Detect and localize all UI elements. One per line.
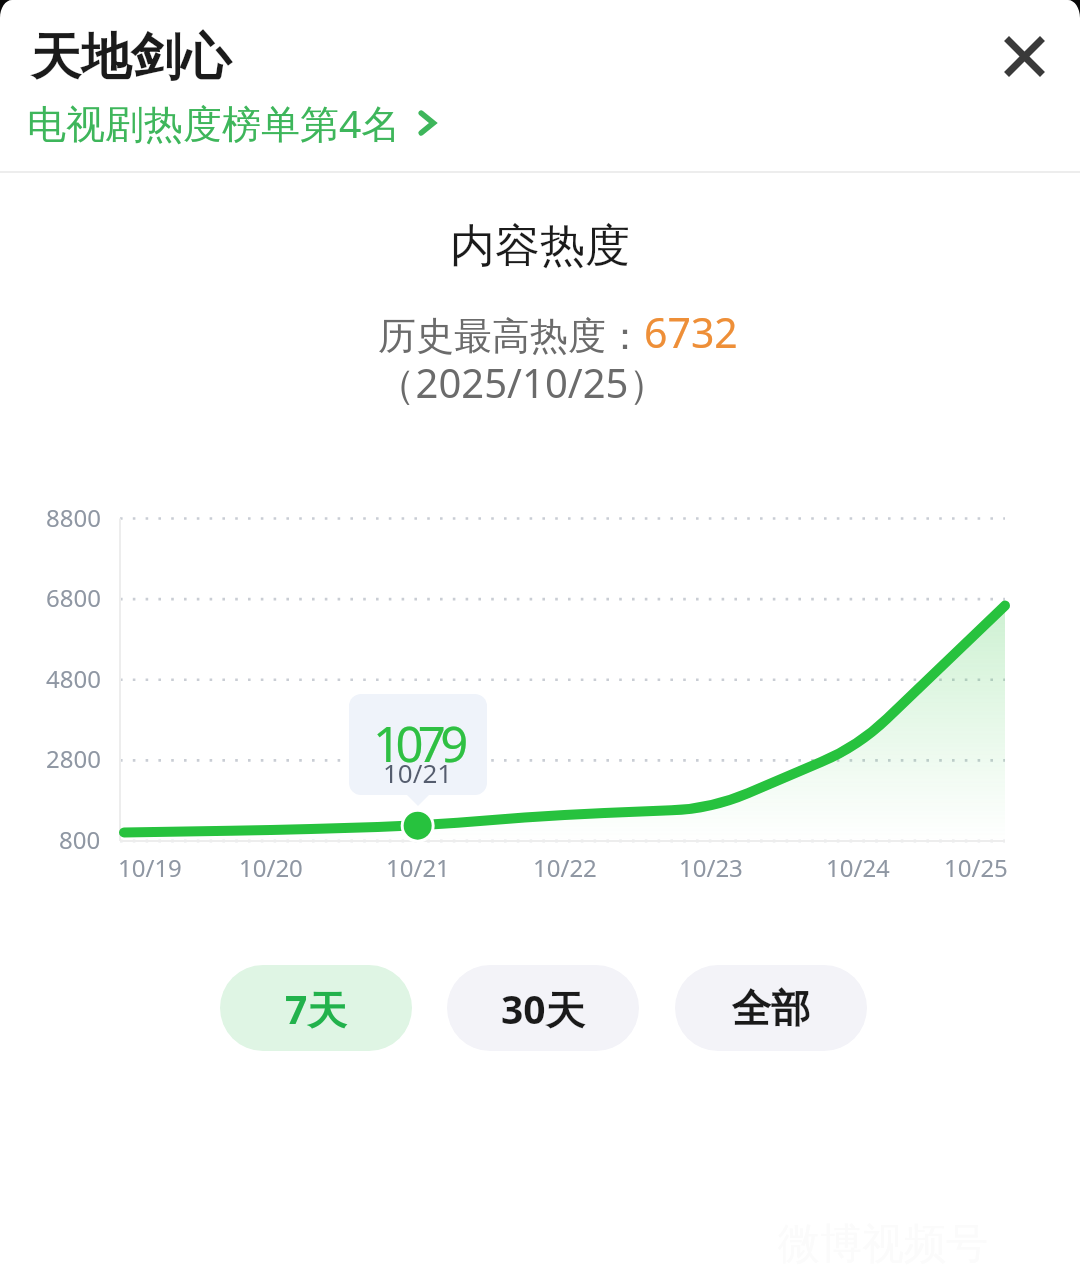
- staticText: 10/25: [944, 851, 1008, 884]
- staticText: 天地剑心: [31, 26, 231, 89]
- button[interactable]: 30天: [447, 965, 639, 1051]
- button[interactable]: 7天: [220, 965, 412, 1051]
- staticText: 10/20: [239, 851, 303, 884]
- staticText: 1079: [373, 710, 463, 777]
- staticText: 10/21: [386, 851, 450, 884]
- staticText: 10/24: [826, 851, 890, 884]
- staticText: 历史最高热度：: [378, 312, 644, 360]
- staticText: 10/22: [533, 851, 597, 884]
- staticText: 2800: [46, 742, 101, 775]
- staticText: 10/21: [383, 755, 453, 790]
- staticText: 电视剧热度榜单第4名: [27, 96, 401, 149]
- button[interactable]: 电视剧热度榜单第4名: [27, 96, 443, 149]
- staticText: 内容热度: [0, 218, 1080, 275]
- staticText: 4800: [46, 662, 101, 695]
- staticText: 30天: [501, 982, 585, 1035]
- staticText: 8800: [46, 501, 101, 534]
- staticText: 全部: [732, 984, 810, 1033]
- button[interactable]: Close: [980, 12, 1068, 100]
- staticText: 10/19: [118, 851, 182, 884]
- staticText: （2025/10/25）: [0, 355, 1062, 410]
- staticText: 10/23: [679, 851, 743, 884]
- button[interactable]: 全部: [675, 965, 867, 1051]
- staticText: 800: [59, 823, 101, 856]
- staticText: 7天: [285, 982, 347, 1035]
- staticText: 6800: [46, 581, 101, 614]
- staticText: 6732: [644, 304, 738, 360]
